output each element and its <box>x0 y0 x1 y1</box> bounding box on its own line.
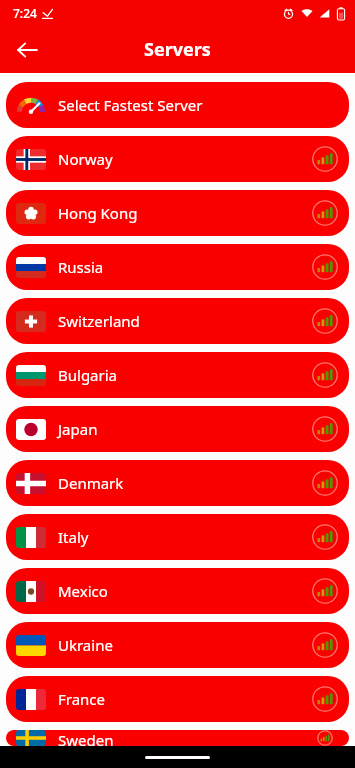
staticText: Servers <box>144 37 211 62</box>
staticText: Hong Kong <box>58 203 138 223</box>
staticText: Sweden <box>58 730 114 746</box>
button[interactable]: Russia <box>6 244 349 290</box>
staticText: Japan <box>58 419 98 439</box>
button[interactable]: Select Fastest Server <box>6 82 349 128</box>
staticText: Italy <box>58 527 89 547</box>
button[interactable]: Bulgaria <box>6 352 349 398</box>
button[interactable]: Sweden <box>6 730 349 746</box>
button[interactable]: Italy <box>6 514 349 560</box>
staticText: Norway <box>58 149 113 169</box>
button[interactable]: Mexico <box>6 568 349 614</box>
button[interactable]: Ukraine <box>6 622 349 668</box>
staticText: Switzerland <box>58 311 140 331</box>
button[interactable]: Norway <box>6 136 349 182</box>
staticText: 7:24 <box>13 5 37 21</box>
staticText: Denmark <box>58 473 124 493</box>
button[interactable]: Back <box>10 33 44 67</box>
staticText: Mexico <box>58 581 108 601</box>
staticText: Select Fastest Server <box>58 95 203 115</box>
button[interactable]: France <box>6 676 349 722</box>
staticText: France <box>58 689 106 709</box>
button[interactable]: Hong Kong <box>6 190 349 236</box>
button[interactable]: Switzerland <box>6 298 349 344</box>
staticText: Russia <box>58 257 104 277</box>
button[interactable]: Japan <box>6 406 349 452</box>
staticText: Bulgaria <box>58 365 118 385</box>
other: Back <box>10 33 44 67</box>
button[interactable]: Denmark <box>6 460 349 506</box>
staticText: Ukraine <box>58 635 113 655</box>
